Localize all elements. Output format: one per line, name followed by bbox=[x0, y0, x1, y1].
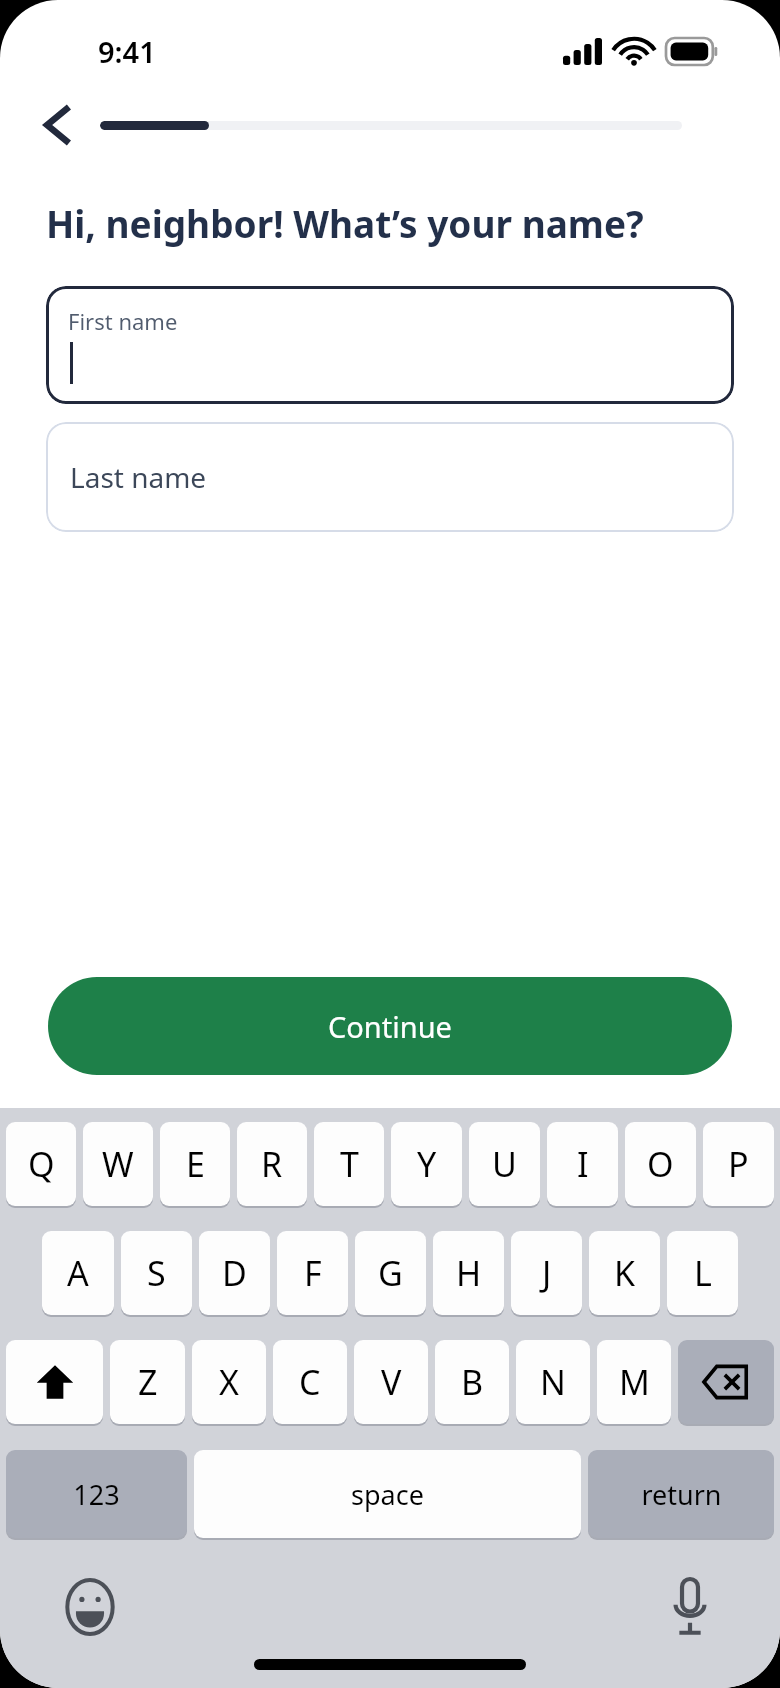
button[interactable]: Backspace bbox=[678, 1340, 774, 1424]
staticText: H bbox=[456, 1250, 482, 1296]
button[interactable]: S bbox=[121, 1231, 192, 1315]
button[interactable]: A bbox=[42, 1231, 114, 1315]
staticText: N bbox=[540, 1359, 566, 1405]
staticText: G bbox=[378, 1250, 403, 1296]
button[interactable]: I bbox=[547, 1122, 618, 1206]
staticText: P bbox=[728, 1141, 749, 1187]
button[interactable]: D bbox=[199, 1231, 270, 1315]
staticText: Z bbox=[138, 1359, 158, 1405]
button[interactable]: R bbox=[237, 1122, 307, 1206]
button[interactable]: Emoji bbox=[58, 1575, 122, 1639]
button[interactable]: First name bbox=[46, 286, 734, 404]
button[interactable]: Z bbox=[110, 1340, 185, 1424]
staticText: Y bbox=[417, 1141, 437, 1187]
button[interactable]: L bbox=[667, 1231, 738, 1315]
button[interactable]: X bbox=[192, 1340, 266, 1424]
staticText: K bbox=[614, 1250, 636, 1296]
staticText: 123 bbox=[73, 1476, 120, 1513]
button[interactable]: J bbox=[511, 1231, 582, 1315]
button[interactable]: E bbox=[160, 1122, 230, 1206]
staticText: J bbox=[542, 1250, 552, 1296]
staticText: M bbox=[619, 1359, 650, 1405]
staticText: T bbox=[340, 1141, 359, 1187]
button[interactable]: P bbox=[703, 1122, 774, 1206]
staticText: W bbox=[102, 1141, 134, 1187]
button[interactable]: B bbox=[435, 1340, 509, 1424]
button[interactable]: C bbox=[273, 1340, 347, 1424]
button[interactable]: Y bbox=[391, 1122, 462, 1206]
button[interactable]: O bbox=[625, 1122, 696, 1206]
button[interactable]: K bbox=[589, 1231, 660, 1315]
staticText: D bbox=[222, 1250, 247, 1296]
staticText: F bbox=[304, 1250, 322, 1296]
button[interactable]: N bbox=[516, 1340, 590, 1424]
staticText: 9:41 bbox=[98, 32, 156, 71]
staticText: Q bbox=[28, 1141, 55, 1187]
button[interactable]: T bbox=[314, 1122, 384, 1206]
staticText: E bbox=[186, 1141, 205, 1187]
staticText: S bbox=[147, 1250, 166, 1296]
button[interactable]: Q bbox=[6, 1122, 76, 1206]
button[interactable]: space bbox=[194, 1450, 581, 1538]
staticText: V bbox=[381, 1359, 402, 1405]
staticText: Last name bbox=[70, 458, 207, 496]
staticText: O bbox=[647, 1141, 674, 1187]
button[interactable]: U bbox=[469, 1122, 540, 1206]
button[interactable]: Back bbox=[30, 97, 86, 153]
button[interactable]: return bbox=[588, 1450, 774, 1538]
staticText: X bbox=[219, 1359, 239, 1405]
button[interactable]: M bbox=[597, 1340, 671, 1424]
staticText: space bbox=[351, 1476, 424, 1513]
staticText: A bbox=[67, 1250, 89, 1296]
button[interactable]: G bbox=[355, 1231, 426, 1315]
staticText: R bbox=[261, 1141, 283, 1187]
button[interactable]: Shift bbox=[6, 1340, 103, 1424]
button[interactable]: F bbox=[277, 1231, 348, 1315]
staticText: First name bbox=[68, 306, 178, 336]
button[interactable]: W bbox=[83, 1122, 153, 1206]
button[interactable]: V bbox=[354, 1340, 428, 1424]
button[interactable]: Continue bbox=[48, 977, 732, 1075]
staticText: B bbox=[461, 1359, 484, 1405]
staticText: L bbox=[694, 1250, 712, 1296]
staticText: I bbox=[577, 1141, 589, 1187]
button[interactable]: 123 bbox=[6, 1450, 187, 1538]
staticText: U bbox=[492, 1141, 517, 1187]
staticText: C bbox=[299, 1359, 321, 1405]
button[interactable]: H bbox=[433, 1231, 504, 1315]
staticText: return bbox=[641, 1476, 722, 1513]
button[interactable]: Last name bbox=[46, 422, 734, 532]
staticText: Continue bbox=[328, 1007, 452, 1046]
button[interactable]: Dictation bbox=[658, 1575, 722, 1639]
staticText: Hi, neighbor! What’s your name? bbox=[46, 198, 734, 248]
